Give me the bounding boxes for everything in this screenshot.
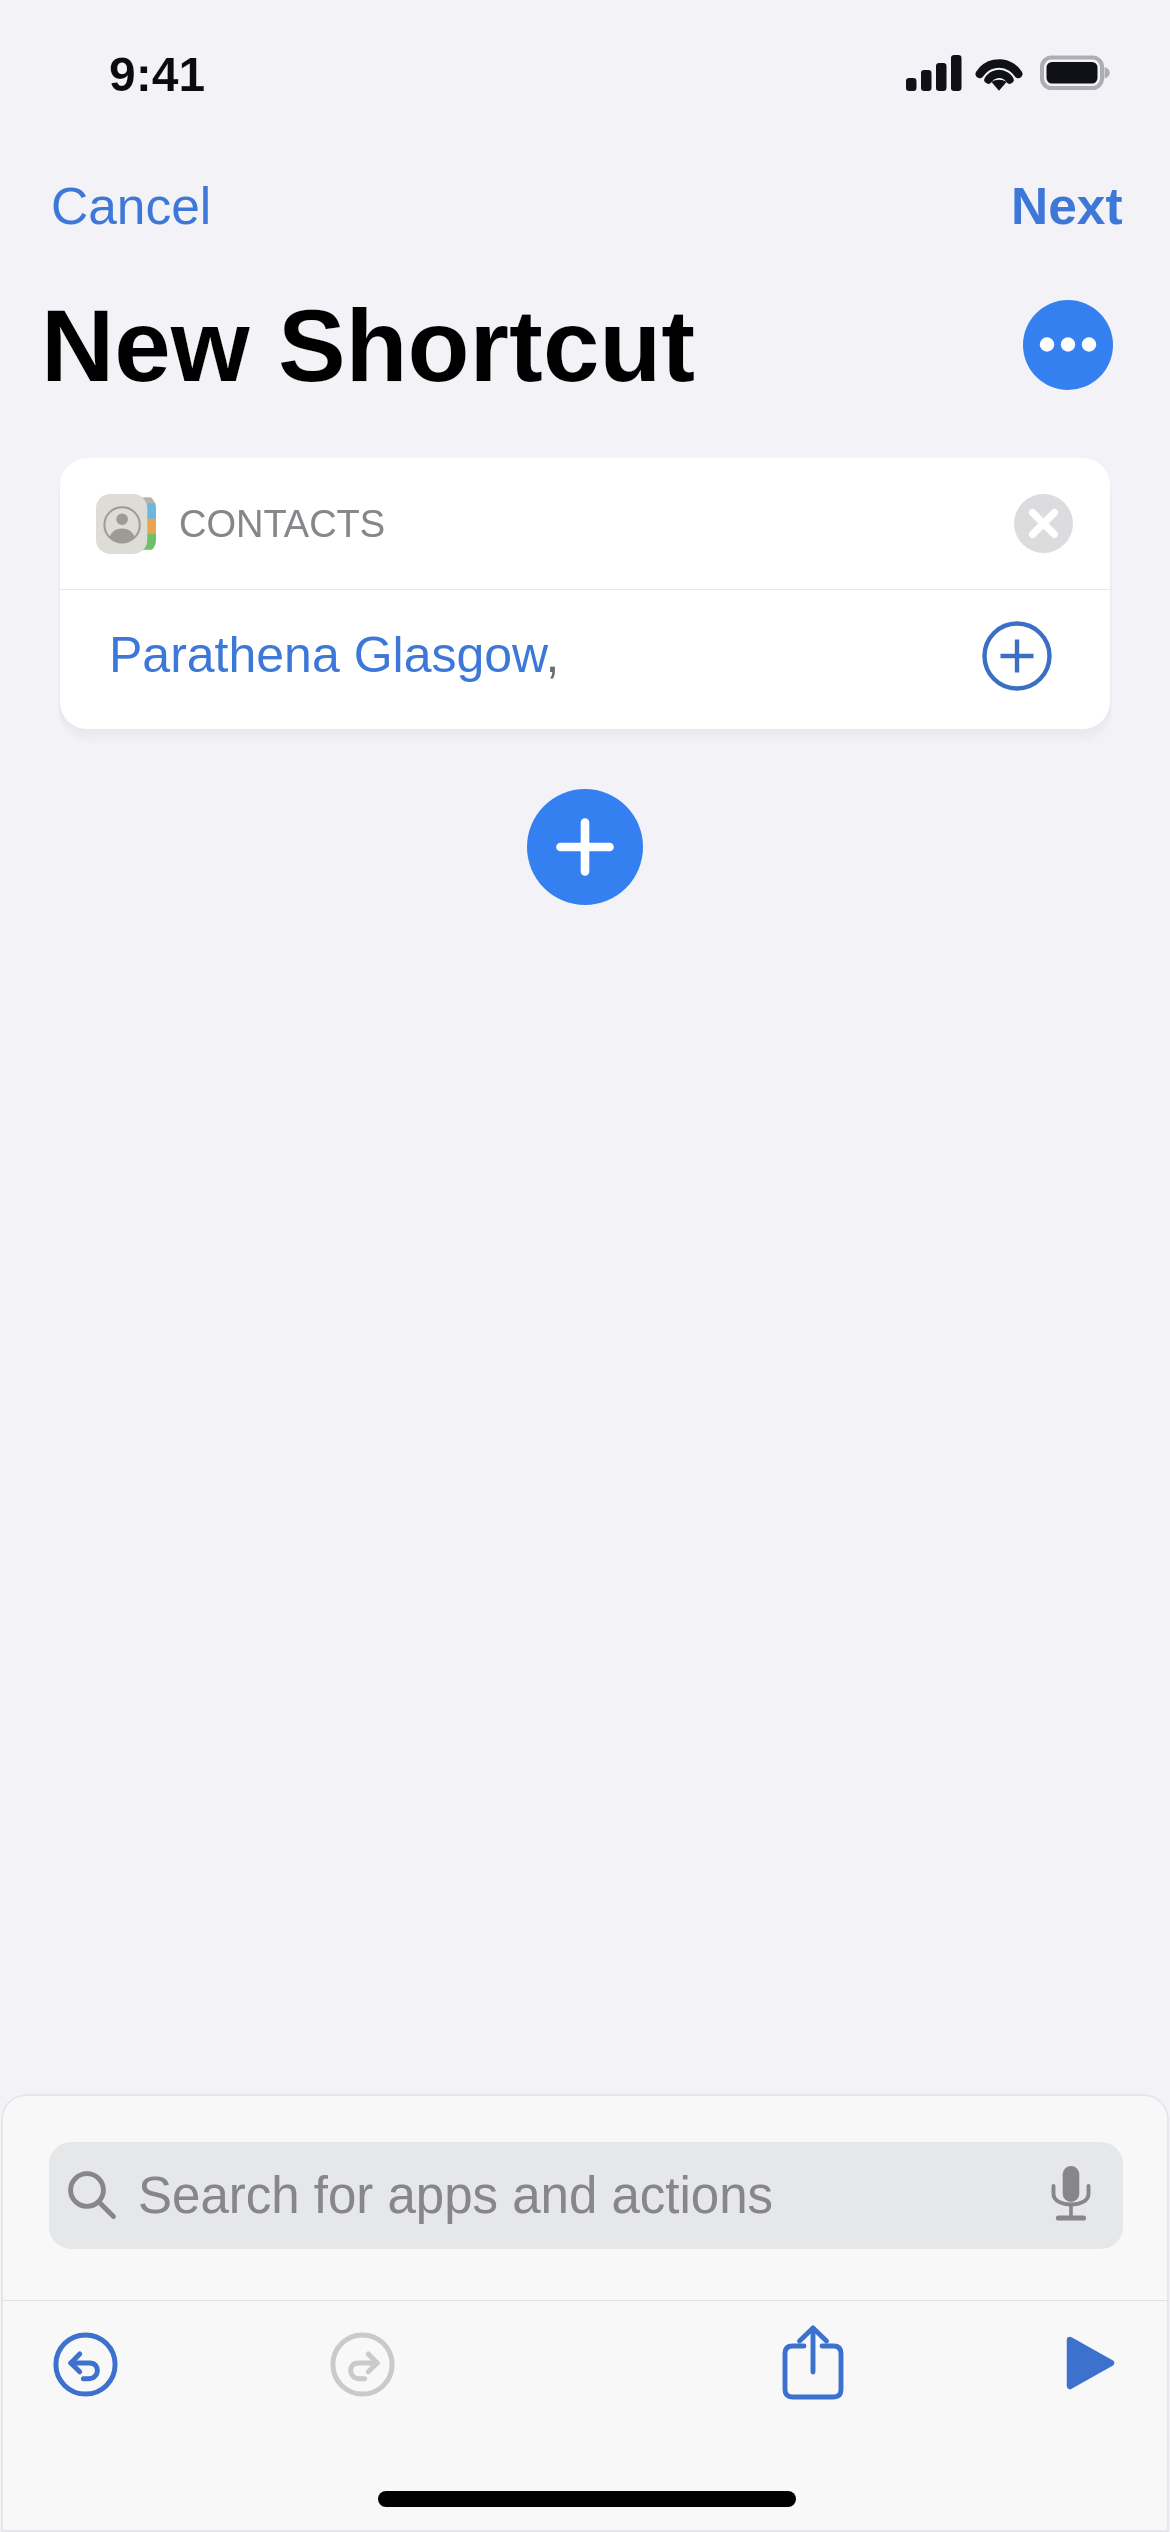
button[interactable]: Add action — [527, 789, 643, 905]
staticText: New Shortcut — [41, 289, 696, 402]
button[interactable]: Redo — [330, 2332, 395, 2397]
staticText: Search for apps and actions — [138, 2167, 774, 2224]
staticText: Next — [1011, 177, 1123, 235]
button[interactable]: CONTACTS — [60, 458, 1110, 589]
button[interactable]: More options — [1023, 300, 1113, 390]
button[interactable]: Share — [773, 2319, 853, 2399]
button[interactable]: Remove action — [1014, 494, 1073, 553]
button[interactable]: Run shortcut — [1063, 2333, 1119, 2389]
button[interactable]: Parathena Glasgow, — [60, 589, 1110, 729]
staticText: Cancel — [51, 177, 212, 235]
button[interactable]: Add parameter — [982, 621, 1052, 691]
staticText: Parathena Glasgow, — [109, 627, 560, 683]
staticText: CONTACTS — [179, 503, 386, 545]
button[interactable]: Cancel — [21, 159, 242, 253]
button[interactable]: Next — [981, 159, 1153, 253]
staticText: 9:41 — [109, 48, 206, 102]
button[interactable]: Search for apps and actions — [49, 2142, 1123, 2249]
button[interactable]: Undo — [53, 2332, 118, 2397]
